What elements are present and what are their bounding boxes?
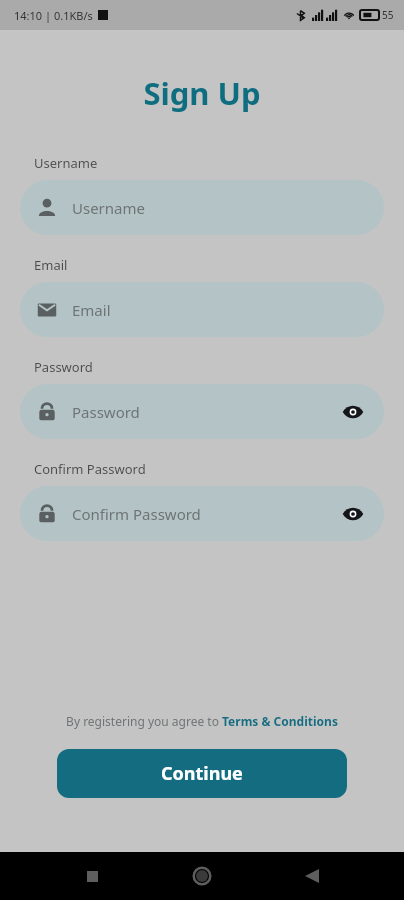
staticText: Username [34,154,98,172]
staticText: Continue [161,761,243,786]
staticText: Confirm Password [34,460,146,478]
button[interactable]: Email [20,282,384,337]
staticText: Sign Up [0,72,404,114]
button[interactable]: Recents [75,859,109,893]
staticText: Password [72,402,140,422]
button[interactable]: Show password [338,499,368,529]
button[interactable]: Show password [338,397,368,427]
button[interactable]: Continue [57,749,347,798]
button[interactable]: Username [20,180,384,235]
staticText: 55 [382,8,394,22]
staticText: Username [72,198,145,218]
staticText: 14:10 | 0.1KB/s [14,8,93,23]
button[interactable]: By registering you agree to Terms & Cond… [0,713,404,729]
button[interactable]: Confirm Password [20,486,384,541]
button[interactable]: Back [295,859,329,893]
button[interactable]: Home [185,859,219,893]
staticText: Confirm Password [72,504,201,524]
staticText: Email [34,256,68,274]
button[interactable]: Password [20,384,384,439]
staticText: Email [72,300,111,320]
staticText: Password [34,358,93,376]
